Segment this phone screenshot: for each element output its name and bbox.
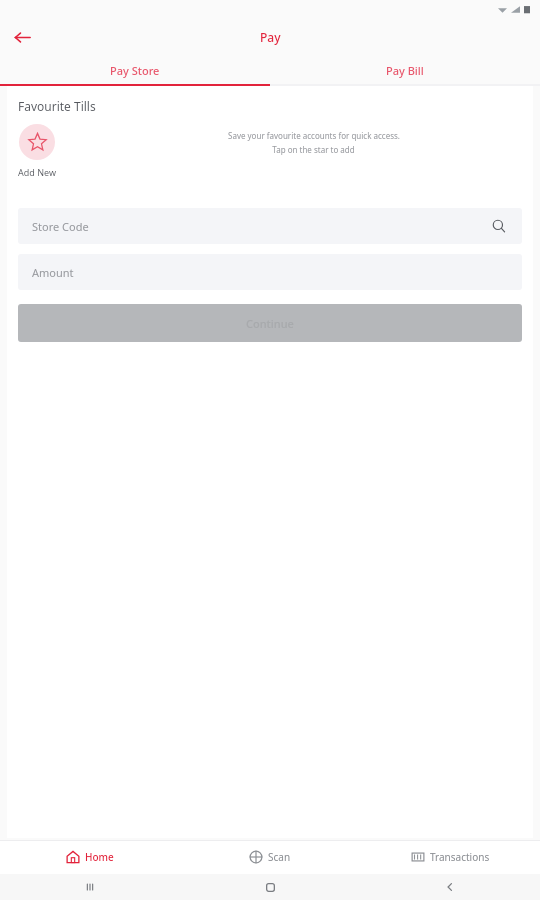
button[interactable]: Amount <box>18 254 522 290</box>
button[interactable]: Store Code <box>18 208 522 244</box>
staticText: Save your favourite accounts for quick a… <box>228 130 400 141</box>
staticText: Add New <box>18 166 56 178</box>
button[interactable]: Scan <box>180 840 360 874</box>
button[interactable]: Home <box>0 840 180 874</box>
staticText: Home <box>85 850 114 864</box>
button[interactable]: Add New <box>18 124 56 178</box>
staticText: Pay Bill <box>386 63 424 78</box>
button[interactable]: Search store <box>490 217 508 235</box>
staticText: Continue <box>246 316 294 331</box>
staticText: Pay <box>260 29 281 45</box>
staticText: Amount <box>32 265 74 280</box>
button[interactable]: Pay Store <box>0 56 270 84</box>
button[interactable]: Transactions <box>360 840 540 874</box>
button[interactable]: Back <box>8 23 36 51</box>
staticText: Scan <box>268 850 291 864</box>
staticText: Favourite Tills <box>18 98 96 114</box>
staticText: Pay Store <box>110 63 160 78</box>
staticText: Store Code <box>32 219 89 234</box>
button[interactable]: Pay Bill <box>270 56 540 84</box>
staticText: Tap on the star to add <box>272 144 355 155</box>
staticText: Transactions <box>430 850 490 864</box>
